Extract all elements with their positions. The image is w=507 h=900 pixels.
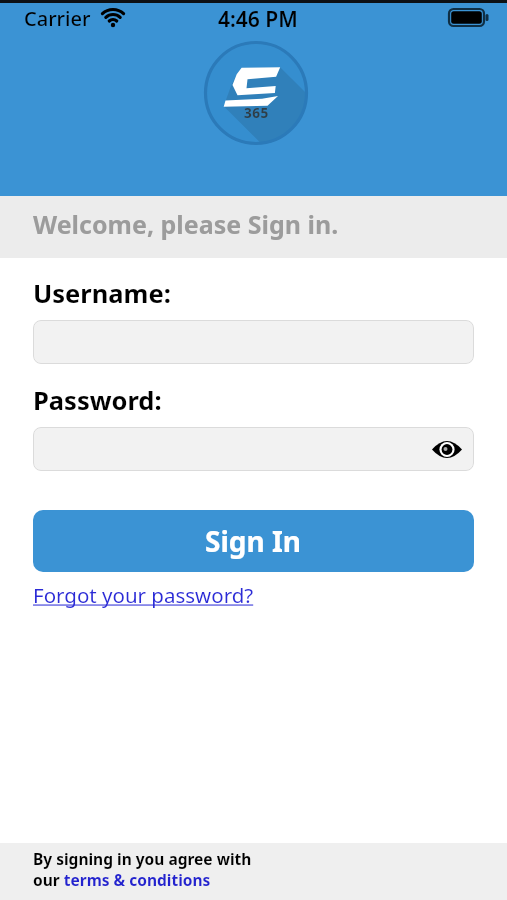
staticText: 4:46 PM: [218, 5, 298, 34]
staticText: 365: [244, 104, 269, 122]
button[interactable]: Forgot your password?: [33, 581, 254, 609]
staticText: Carrier: [24, 5, 91, 32]
button[interactable]: [33, 427, 474, 471]
staticText: Forgot your password?: [33, 581, 254, 609]
staticText: Welcome, please Sign in.: [33, 207, 339, 241]
staticText: our terms & conditions: [33, 869, 211, 890]
staticText: Password:: [33, 383, 162, 418]
button[interactable]: [432, 439, 462, 460]
button[interactable]: our terms & conditions: [33, 869, 211, 890]
button[interactable]: Sign In: [33, 510, 474, 572]
staticText: Username:: [33, 276, 171, 311]
button[interactable]: [33, 320, 474, 364]
staticText: Sign In: [205, 522, 302, 560]
staticText: By signing in you agree with: [33, 848, 252, 869]
